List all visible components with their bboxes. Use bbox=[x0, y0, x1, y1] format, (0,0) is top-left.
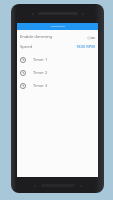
button[interactable]: Timer bbox=[17, 79, 98, 92]
staticText: Speed bbox=[20, 44, 33, 50]
staticText: Enable dimming bbox=[20, 34, 53, 40]
button[interactable]: 1830 RPM bbox=[76, 44, 95, 49]
staticText: Timer 1 bbox=[33, 57, 48, 62]
button[interactable]: Timer bbox=[17, 66, 98, 79]
other: Timer bbox=[20, 70, 26, 76]
staticText: 1830 RPM bbox=[76, 44, 95, 49]
staticText: Timer 2 bbox=[33, 70, 48, 75]
button[interactable]: Enable dimming bbox=[17, 33, 98, 41]
other: Timer bbox=[20, 57, 26, 63]
staticText: Timer 3 bbox=[33, 83, 48, 88]
button[interactable]: Timer bbox=[17, 53, 98, 66]
other: Timer bbox=[20, 83, 26, 89]
